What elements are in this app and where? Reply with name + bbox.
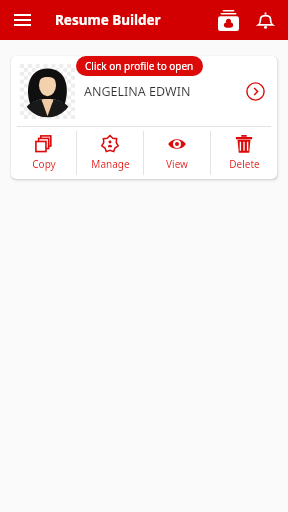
button[interactable]: Notifications <box>251 6 279 34</box>
button[interactable]: Contacts <box>213 5 243 35</box>
button[interactable]: Manage <box>77 127 143 179</box>
staticText: Manage <box>91 157 130 171</box>
staticText: ANGELINA EDWIN <box>84 83 191 100</box>
button[interactable]: Delete <box>211 127 277 179</box>
button[interactable]: Click on profile to open <box>76 56 203 76</box>
staticText: Resume Builder <box>55 11 161 29</box>
staticText: View <box>166 157 188 171</box>
staticText: Click on profile to open <box>85 59 194 73</box>
button[interactable]: Copy <box>11 127 76 179</box>
staticText: Copy <box>32 157 56 171</box>
other: Open profile <box>241 77 269 105</box>
staticText: Delete <box>229 157 260 171</box>
button[interactable]: Menu <box>7 5 37 35</box>
button[interactable]: ANGELINA EDWIN <box>11 56 277 126</box>
button[interactable]: View <box>144 127 210 179</box>
